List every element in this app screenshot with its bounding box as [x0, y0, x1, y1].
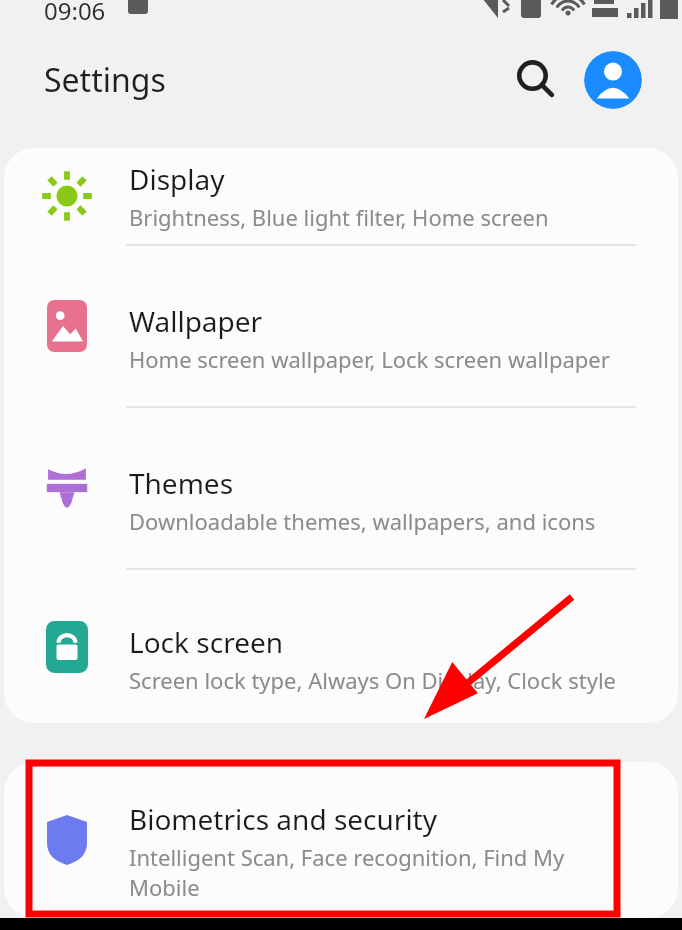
button[interactable]: Wallpaper: [4, 246, 678, 406]
button[interactable]: Account: [584, 51, 642, 109]
button[interactable]: Search: [504, 48, 568, 112]
staticText: Intelligent Scan, Face recognition, Find…: [129, 842, 634, 902]
button[interactable]: Lock screen: [4, 570, 678, 723]
staticText: Themes: [129, 464, 234, 502]
staticText: Brightness, Blue light filter, Home scre…: [129, 202, 549, 232]
staticText: 09:06: [44, 0, 106, 24]
staticText: Biometrics and security: [129, 800, 438, 838]
staticText: Home screen wallpaper, Lock screen wallp…: [129, 344, 610, 374]
staticText: Screen lock type, Always On Display, Clo…: [129, 665, 616, 695]
button[interactable]: Themes: [4, 408, 678, 568]
staticText: Display: [129, 160, 225, 198]
staticText: Wallpaper: [129, 302, 263, 340]
button[interactable]: Biometrics and security: [4, 762, 678, 918]
button[interactable]: Display: [4, 148, 678, 244]
staticText: Downloadable themes, wallpapers, and ico…: [129, 506, 596, 536]
staticText: Settings: [44, 58, 166, 102]
staticText: Lock screen: [129, 623, 284, 661]
